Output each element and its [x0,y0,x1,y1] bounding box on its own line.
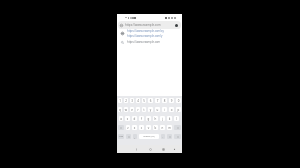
staticText: 0 [176,99,181,103]
staticText: o [169,108,174,112]
staticText: g [146,117,151,121]
button[interactable]: 0 [176,98,181,103]
button[interactable]: p [176,107,181,112]
staticText: 3 [130,99,134,103]
staticText: 9 [169,99,174,103]
staticText: b [153,126,158,130]
staticText: 5 [142,99,146,103]
button[interactable]: , [133,134,137,139]
button[interactable]: r [136,107,140,112]
button[interactable]: . [161,134,165,139]
button[interactable]: https://www.example.com [118,21,181,29]
staticText: 4 [136,99,140,103]
staticText: https://www.example.com [127,40,161,44]
button[interactable]: 7 [155,98,160,103]
button[interactable]: t [142,107,146,112]
staticText: . [161,135,165,139]
button[interactable]: l [174,116,179,121]
staticText: https://www.example.com/xy [127,29,164,33]
button[interactable] [167,134,172,139]
staticText: e [130,108,134,112]
button[interactable]: 3 [130,98,134,103]
staticText: t [142,108,146,112]
staticText: , [133,135,137,139]
staticText: q [118,108,122,112]
staticText: a [119,117,123,121]
staticText: w [124,108,128,112]
button[interactable]: 1 [118,98,122,103]
button[interactable]: e [130,107,134,112]
button[interactable]: w [124,107,128,112]
button[interactable]: s [125,116,130,121]
button[interactable]: x [132,125,137,130]
staticText: s [125,117,130,121]
staticText: 7 [155,99,160,103]
staticText: ?123 [118,135,124,138]
staticText: https://www.example.com/y [127,34,163,38]
button[interactable] [174,125,181,130]
button[interactable]: g [146,116,151,121]
staticText: x [132,126,137,130]
button[interactable]: 4 [136,98,140,103]
staticText: c [139,126,144,130]
staticText: v [146,126,151,130]
button[interactable]: Hide keyboard [170,145,178,153]
staticText: 6 [148,99,153,103]
staticText: i [162,108,167,112]
button[interactable]: English (US) [139,134,159,139]
staticText: m [167,126,172,130]
button[interactable]: 5 [142,98,146,103]
staticText: k [167,117,172,121]
button[interactable]: Back [132,145,140,153]
button[interactable]: https://www.example.com/xy [117,29,182,38]
staticText: d [132,117,137,121]
staticText: r [136,108,140,112]
button[interactable] [126,134,131,139]
button[interactable]: h [153,116,158,121]
button[interactable]: ?123 [118,134,124,139]
button[interactable]: j [160,116,165,121]
staticText: English (US) [139,135,159,138]
staticText: https://www.example.com [125,23,161,27]
staticText: 8 [162,99,167,103]
button[interactable]: https://www.example.com [117,38,182,46]
button[interactable]: 8 [162,98,167,103]
button[interactable]: b [153,125,158,130]
staticText: f [139,117,144,121]
button[interactable]: 6 [148,98,153,103]
button[interactable]: n [160,125,165,130]
staticText: n [160,126,165,130]
button[interactable]: Home [146,145,154,153]
button[interactable]: q [118,107,122,112]
button[interactable]: u [155,107,160,112]
staticText: l [174,117,179,121]
button[interactable]: a [119,116,123,121]
button[interactable]: Clear text [175,24,178,27]
button[interactable]: c [139,125,144,130]
button[interactable]: o [169,107,174,112]
button[interactable]: Recent apps [159,145,167,153]
button[interactable]: v [146,125,151,130]
button[interactable] [174,134,181,139]
staticText: u [155,108,160,112]
staticText: z [126,126,130,130]
staticText: j [160,117,165,121]
button[interactable]: f [139,116,144,121]
staticText: h [153,117,158,121]
button[interactable]: d [132,116,137,121]
button[interactable]: z [126,125,130,130]
button[interactable]: k [167,116,172,121]
button[interactable]: m [167,125,172,130]
staticText: 2 [124,99,128,103]
button[interactable]: 9 [169,98,174,103]
button[interactable]: 2 [124,98,128,103]
staticText: 1 [118,99,122,103]
button[interactable]: y [148,107,153,112]
staticText: y [148,108,153,112]
button[interactable] [118,125,124,130]
staticText: p [176,108,181,112]
button[interactable]: i [162,107,167,112]
